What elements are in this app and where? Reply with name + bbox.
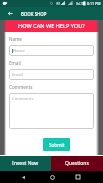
staticText: 8:11 PM	[87, 1, 101, 6]
staticText: Name	[13, 48, 25, 54]
staticText: Email	[9, 60, 21, 66]
button[interactable]: Questions	[51, 156, 103, 171]
staticText: Name	[9, 36, 22, 42]
button[interactable]: Name	[9, 45, 94, 56]
button[interactable]: Recents	[72, 171, 84, 183]
staticText: VoLTE	[76, 2, 84, 6]
staticText: Comments	[12, 96, 34, 102]
button[interactable]: Back	[4, 7, 17, 20]
staticText: Comments	[9, 84, 33, 90]
button[interactable]: Submit	[43, 138, 70, 151]
staticText: BOOK SHOP	[21, 11, 47, 17]
button[interactable]: Comments	[9, 93, 94, 129]
staticText: Questions	[65, 160, 89, 167]
button[interactable]: Back	[17, 171, 29, 183]
button[interactable]: Invest Now	[0, 156, 51, 171]
button[interactable]: Email	[9, 69, 94, 80]
button[interactable]: Home	[46, 171, 58, 183]
staticText: Invest Now	[12, 160, 39, 167]
staticText: HOW CAN WE HELP YOU?	[18, 22, 85, 30]
staticText: Email	[12, 72, 23, 78]
staticText: Submit	[49, 142, 65, 148]
